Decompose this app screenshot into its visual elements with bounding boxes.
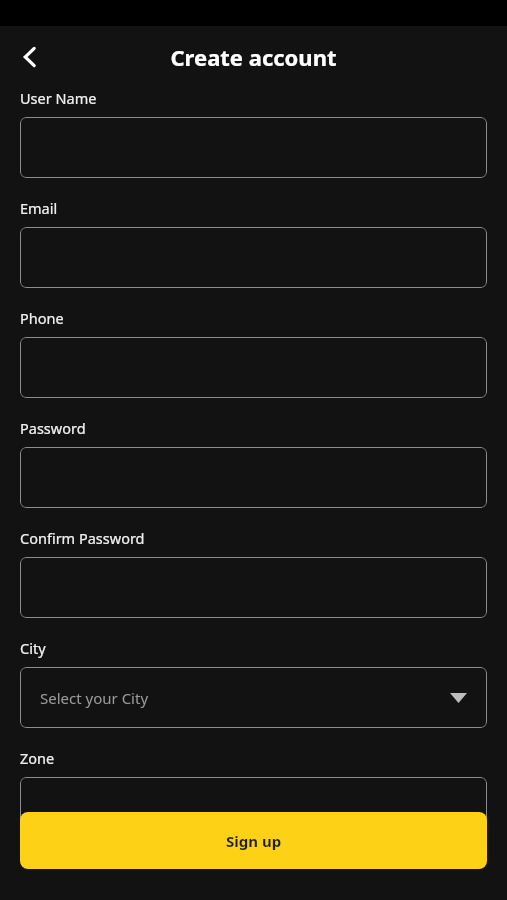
staticText: Email <box>20 198 58 218</box>
button[interactable] <box>20 337 487 398</box>
staticText: Select your City <box>40 688 450 708</box>
staticText: Zone <box>20 748 55 768</box>
staticText: Password <box>20 418 86 438</box>
button[interactable] <box>20 227 487 288</box>
staticText: Sign up <box>226 831 282 851</box>
button[interactable] <box>20 447 487 508</box>
button[interactable] <box>20 117 487 178</box>
staticText: Confirm Password <box>20 528 145 548</box>
button[interactable]: Back <box>13 40 47 74</box>
button[interactable]: Sign up <box>20 812 487 869</box>
button[interactable] <box>20 777 487 838</box>
button[interactable] <box>20 557 487 618</box>
button[interactable]: Select your City <box>20 667 487 728</box>
staticText: Create account <box>0 42 507 72</box>
staticText: Phone <box>20 308 64 328</box>
staticText: User Name <box>20 88 97 108</box>
staticText: City <box>20 638 46 658</box>
